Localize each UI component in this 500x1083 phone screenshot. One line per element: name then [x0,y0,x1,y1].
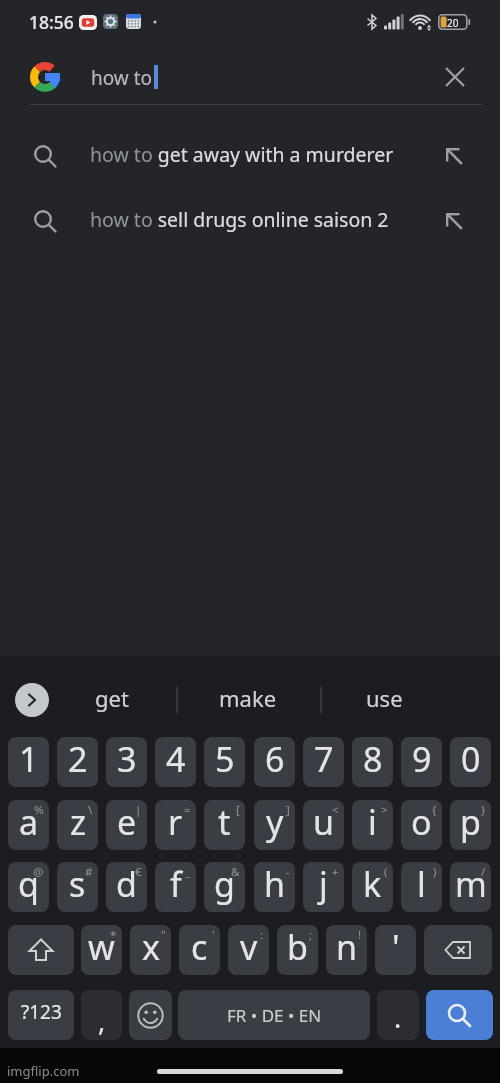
staticText: FR • DE • EN [227,1004,322,1027]
button[interactable]: i [352,800,393,850]
button[interactable]: n [326,925,367,975]
button[interactable]: q [8,862,49,912]
button[interactable]: get [57,676,167,720]
staticText: p [460,800,481,845]
staticText: 2 [68,737,88,782]
button[interactable]: how to get away with a murderer [0,132,500,182]
button[interactable]: a [8,800,49,850]
staticText: } [481,802,486,818]
button[interactable]: p [450,800,491,850]
staticText: t [218,800,231,845]
staticText: f [170,862,182,907]
button[interactable]: , [81,990,122,1040]
staticText: d [116,862,137,907]
button[interactable]: make [193,676,303,720]
button[interactable]: 1 [8,737,49,787]
staticText: 7 [314,737,334,782]
button[interactable]: 2 [57,737,98,787]
staticText: ) [433,864,437,880]
button[interactable]: y [254,800,295,850]
staticText: - [286,864,290,880]
button[interactable]: t [204,800,245,850]
button[interactable]: v [228,925,269,975]
button[interactable]: c [179,925,220,975]
button[interactable]: x [130,925,171,975]
button[interactable]: o [401,800,442,850]
staticText: = [184,802,191,818]
button[interactable]: 8 [352,737,393,787]
staticText: @ [33,864,44,880]
button[interactable]: 0 [450,737,491,787]
button[interactable]: d [106,862,147,912]
button[interactable]: l [401,862,442,912]
staticText: c [191,925,208,970]
button[interactable]: ?123 [8,990,74,1040]
staticText: r [168,800,183,845]
staticText: \ [88,802,93,818]
staticText: how to sell drugs online saison 2 [90,206,389,233]
staticText: 6 [265,737,285,782]
button[interactable] [426,990,493,1040]
staticText: imgflip.com [7,1062,80,1080]
button[interactable]: e [106,800,147,850]
staticText: # [85,864,93,880]
button[interactable]: w [81,925,122,975]
button[interactable]: 6 [254,737,295,787]
staticText: y [266,800,284,845]
button[interactable]: r [155,800,196,850]
staticText: 1 [19,737,39,782]
staticText: how to get away with a murderer [90,141,394,168]
staticText: " [161,927,166,943]
button[interactable] [15,683,49,717]
staticText: o [411,800,432,845]
staticText: 18:56 [29,10,74,34]
staticText: ( [384,864,388,880]
button[interactable]: 7 [303,737,344,787]
staticText: n [336,925,358,970]
staticText: s [69,862,86,907]
staticText: ?123 [21,999,62,1025]
button[interactable] [424,925,492,975]
button[interactable]: ' [375,925,416,975]
staticText: j [319,862,328,907]
staticText: / [481,864,486,880]
staticText: get [95,683,129,713]
button[interactable]: s [57,862,98,912]
button[interactable]: 5 [204,737,245,787]
button[interactable] [446,68,464,86]
button[interactable]: b [277,925,318,975]
button[interactable]: FR • DE • EN [178,990,370,1040]
staticText: 8 [363,737,383,782]
button[interactable] [129,990,172,1040]
button[interactable]: use [329,676,439,720]
button[interactable]: how to sell drugs online saison 2 [0,197,500,247]
staticText: * [110,927,117,943]
staticText: q [18,862,39,907]
button[interactable]: z [57,800,98,850]
button[interactable]: k [352,862,393,912]
button[interactable]: 4 [155,737,196,787]
button[interactable]: f [155,862,196,912]
button[interactable]: u [303,800,344,850]
staticText: 4 [166,737,186,782]
staticText: m [455,862,487,907]
button[interactable]: . [377,990,419,1040]
staticText: > [381,802,388,818]
button[interactable]: h [254,862,295,912]
staticText: ; [309,927,313,943]
staticText: 3 [117,737,137,782]
staticText: 5 [215,737,235,782]
button[interactable]: m [450,862,491,912]
staticText: € [135,864,142,880]
button[interactable]: 9 [401,737,442,787]
staticText: use [366,683,403,713]
button[interactable] [8,925,74,975]
staticText: + [332,864,339,880]
staticText: z [70,800,86,845]
button[interactable]: 3 [106,737,147,787]
staticText: b [287,925,308,970]
staticText: { [432,802,437,818]
staticText: , [98,1002,106,1039]
button[interactable]: j [303,862,344,912]
button[interactable]: g [204,862,245,912]
